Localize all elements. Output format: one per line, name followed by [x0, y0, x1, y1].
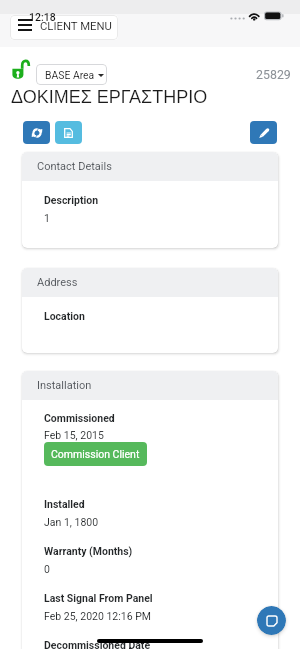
button[interactable]: Refresh	[23, 121, 50, 144]
button[interactable]: Documents	[55, 121, 82, 144]
staticText: Installation	[37, 379, 92, 392]
staticText: Contact Details	[37, 160, 112, 173]
staticText: Decommissioned Date	[44, 639, 151, 649]
staticText: ΔΟΚΙΜΕΣ ΕΡΓΑΣΤΗΡΙΟ	[11, 87, 208, 107]
staticText: Feb 25, 2020 12:16 PM	[44, 610, 151, 622]
button[interactable]: CLIENT MENU	[10, 15, 118, 40]
staticText: Address	[37, 276, 78, 289]
staticText: Installed	[44, 498, 85, 510]
button[interactable]: BASE Area	[36, 64, 107, 85]
button[interactable]: Messages	[257, 606, 286, 635]
staticText: BASE Area	[45, 69, 95, 81]
staticText: 25829	[256, 67, 291, 82]
staticText: 1	[44, 212, 50, 224]
staticText: Feb 15, 2015	[44, 429, 104, 441]
button[interactable]: Commission Client	[44, 442, 147, 466]
staticText: 0	[44, 563, 50, 575]
staticText: Location	[44, 310, 85, 322]
staticText: Warranty (Months)	[44, 545, 133, 557]
staticText: 12:18	[29, 11, 56, 23]
button[interactable]: Edit	[250, 121, 277, 144]
staticText: Jan 1, 1800	[44, 516, 99, 528]
staticText: Description	[44, 194, 99, 206]
staticText: Commission Client	[51, 448, 140, 460]
staticText: Commissioned	[44, 412, 115, 424]
staticText: CLIENT MENU	[40, 20, 112, 33]
staticText: Last Signal From Panel	[44, 592, 153, 604]
